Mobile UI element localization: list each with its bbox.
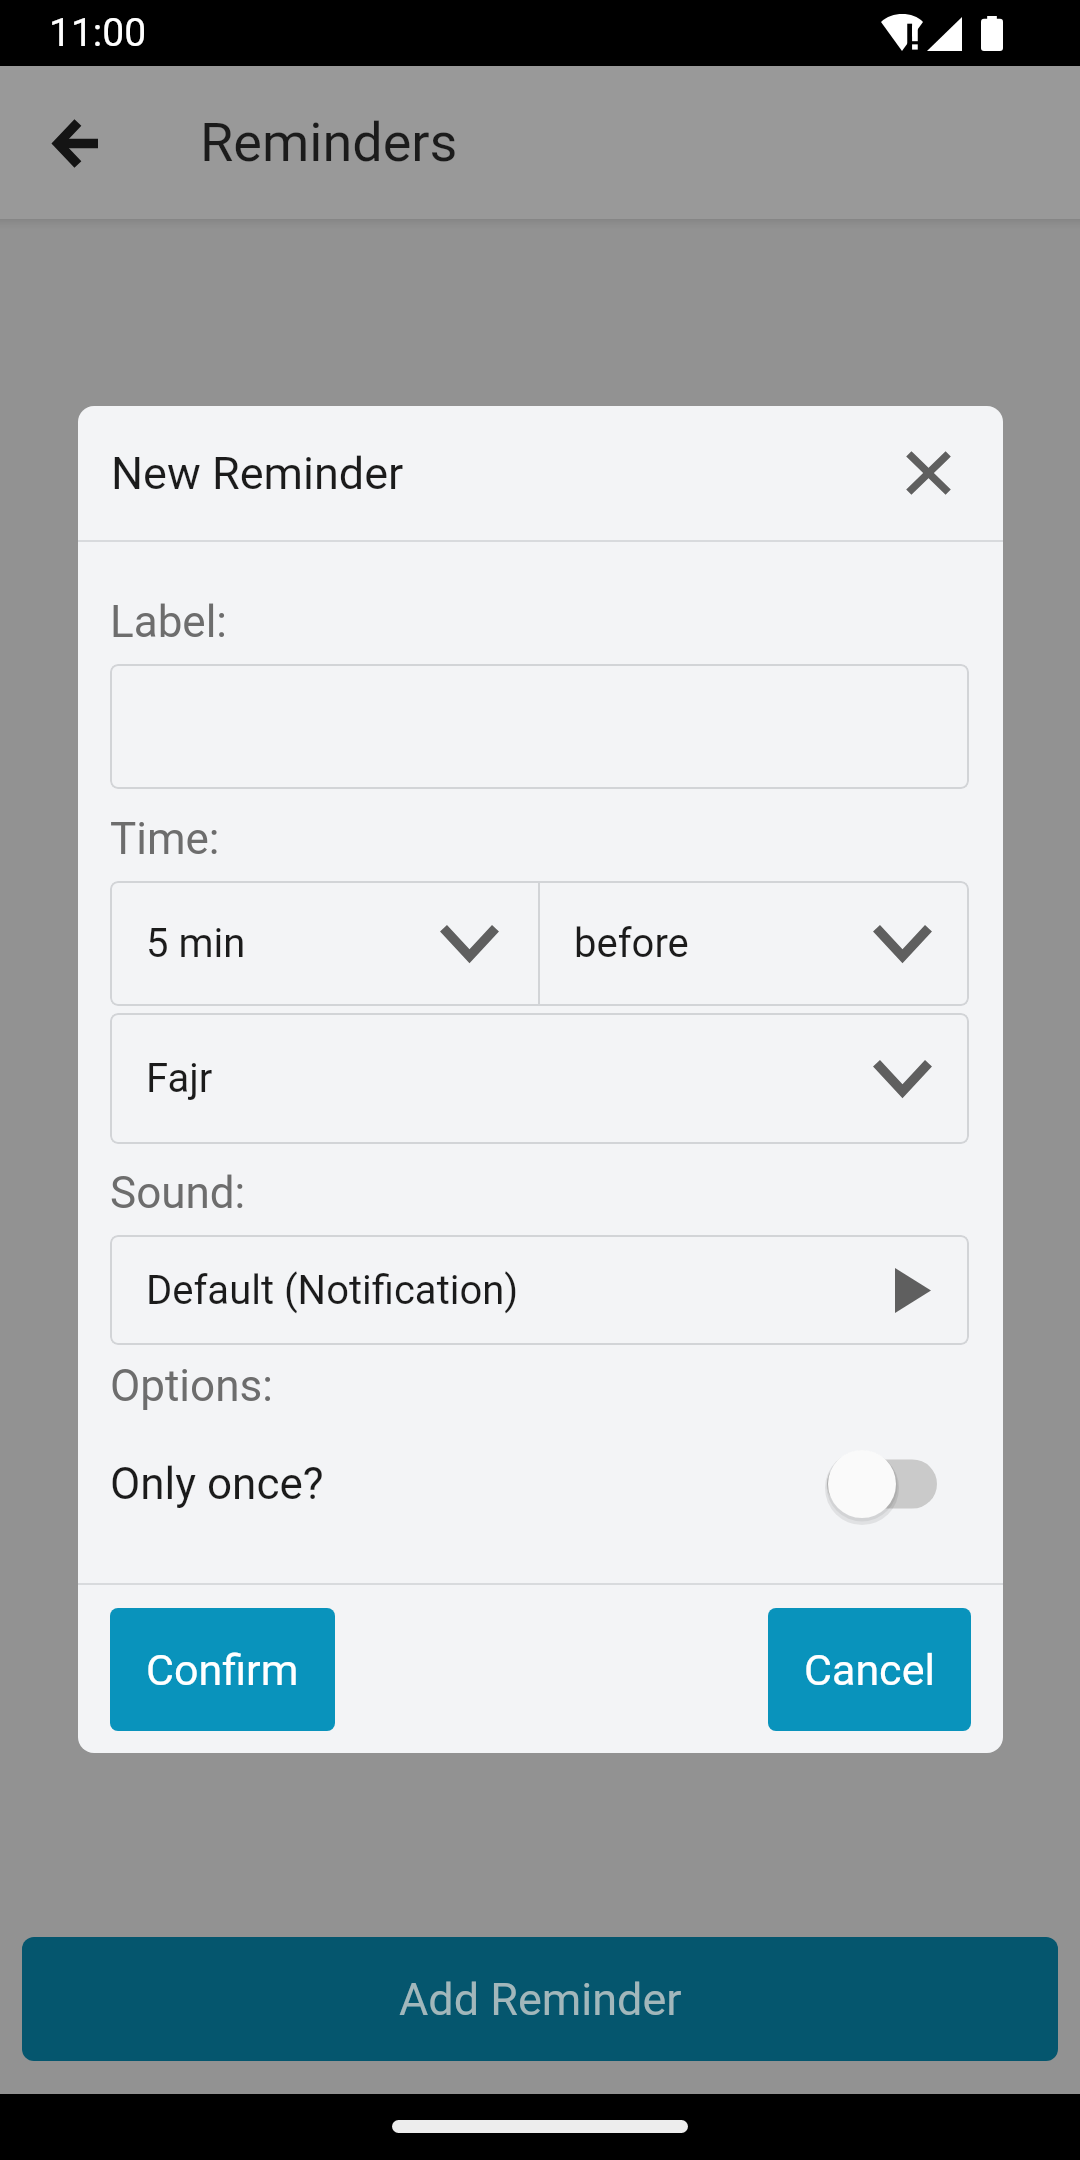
staticText: Cancel (804, 1645, 935, 1695)
staticText: Default (Notification) (146, 1267, 519, 1314)
button[interactable]: before (540, 881, 969, 1006)
staticText: before (574, 920, 689, 967)
button[interactable]: Back (14, 81, 138, 205)
button[interactable]: Cancel (768, 1608, 971, 1731)
button[interactable]: Add Reminder (22, 1937, 1058, 2061)
staticText: Confirm (146, 1645, 299, 1695)
staticText: 11:00 (49, 10, 147, 56)
button[interactable]: 5 min (110, 881, 538, 1006)
button[interactable] (110, 664, 969, 789)
staticText: Label: (110, 596, 228, 648)
staticText: Fajr (146, 1055, 213, 1102)
button[interactable]: Home (392, 2120, 688, 2133)
staticText: Add Reminder (399, 1973, 682, 2026)
button[interactable]: Confirm (110, 1608, 335, 1731)
button[interactable]: Close (880, 425, 976, 521)
staticText: Sound: (110, 1167, 246, 1219)
staticText: 5 min (146, 920, 246, 967)
button[interactable]: Only once? (110, 1428, 969, 1540)
button[interactable]: Fajr (110, 1013, 969, 1144)
staticText: Reminders (200, 111, 458, 174)
staticText: Only once? (110, 1458, 324, 1510)
staticText: Time: (110, 813, 220, 865)
staticText: Options: (110, 1360, 273, 1412)
button[interactable]: Default (Notification) (110, 1235, 969, 1345)
staticText: New Reminder (111, 447, 404, 500)
